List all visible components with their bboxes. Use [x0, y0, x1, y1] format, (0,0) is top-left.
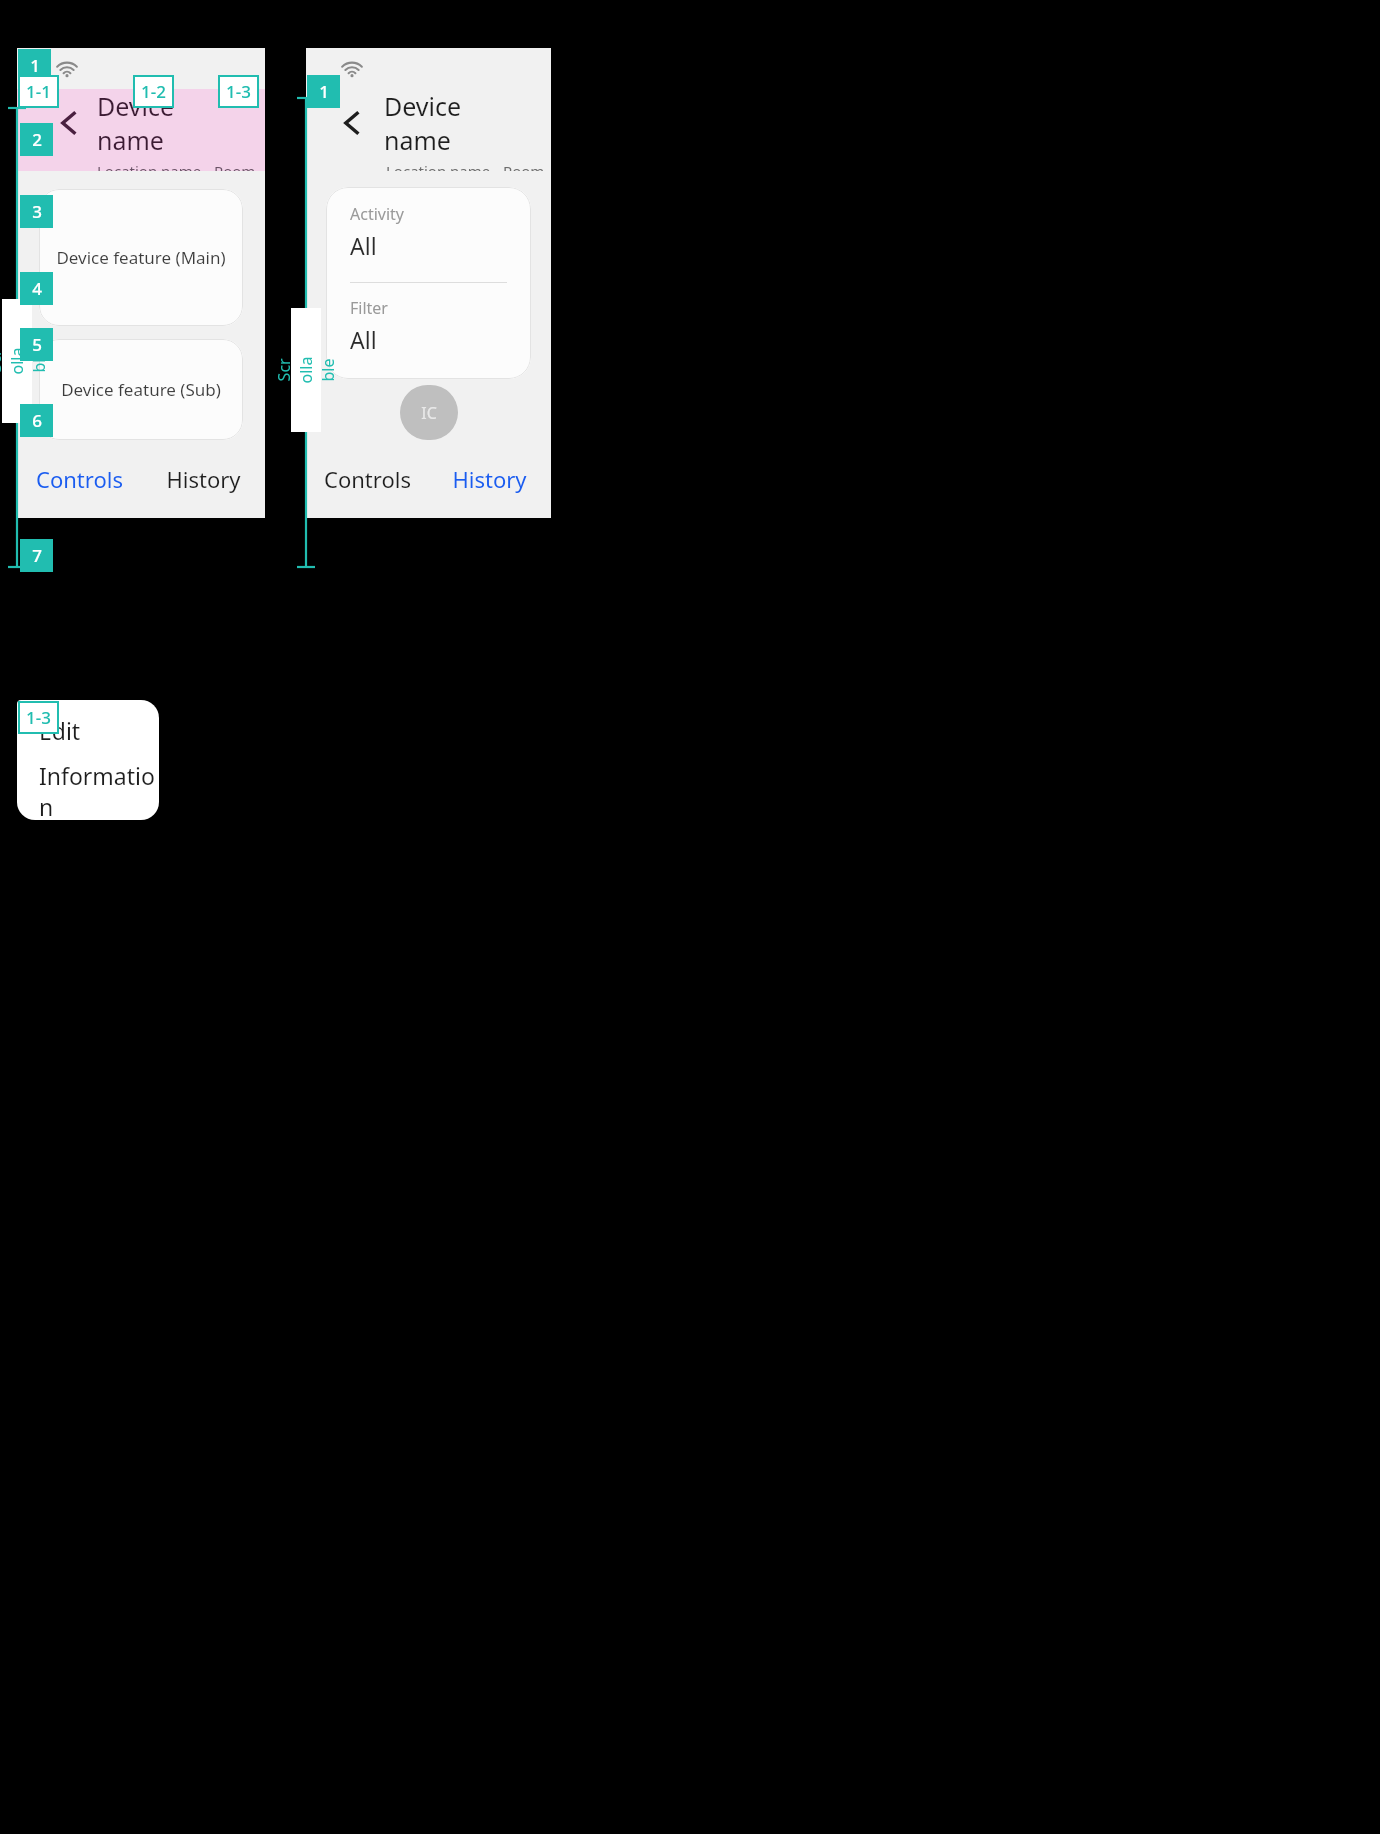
staticText: Activity	[350, 203, 405, 225]
button[interactable]: Device feature (Sub)	[39, 339, 243, 440]
staticText: Controls	[36, 464, 123, 494]
staticText: Edit	[39, 715, 81, 746]
staticText: All	[350, 230, 377, 261]
staticText: 1-3	[26, 706, 51, 729]
staticText: 7	[32, 544, 42, 567]
staticText: Scrollable	[273, 355, 339, 385]
staticText: Device name	[97, 89, 247, 157]
staticText: 1	[30, 54, 40, 77]
button[interactable]: Controls	[306, 440, 428, 518]
staticText: 6	[32, 409, 42, 432]
staticText: Filter	[350, 297, 388, 319]
staticText: Location name - Room name	[386, 161, 551, 171]
staticText: Controls	[324, 464, 411, 494]
button[interactable]: Edit	[17, 700, 159, 760]
button[interactable]: Filter	[326, 283, 531, 379]
button[interactable]: Back	[53, 106, 87, 140]
staticText: All	[350, 324, 377, 355]
button[interactable]: Back	[336, 106, 370, 140]
staticText: 1-3	[226, 80, 251, 103]
button[interactable]: Device feature (Main)	[39, 189, 243, 326]
staticText: Device feature (Main)	[56, 246, 226, 269]
button[interactable]: Activity	[326, 187, 531, 282]
staticText: 1-1	[26, 80, 51, 103]
staticText: Information	[39, 760, 159, 820]
staticText: IC	[421, 402, 437, 424]
button[interactable]: History	[141, 440, 265, 518]
staticText: 1	[319, 80, 329, 103]
staticText: 5	[32, 333, 42, 356]
staticText: Location name - Room name	[97, 161, 265, 171]
staticText: Device name	[384, 89, 531, 157]
staticText: History	[166, 464, 241, 494]
staticText: 3	[32, 200, 42, 223]
button[interactable]: Information	[17, 760, 159, 820]
staticText: History	[452, 464, 527, 494]
staticText: Device feature (Sub)	[61, 378, 221, 401]
button[interactable]: Controls	[17, 440, 141, 518]
staticText: 2	[32, 128, 42, 151]
staticText: 4	[32, 277, 42, 300]
staticText: 1-2	[141, 80, 166, 103]
staticText: Scrollable	[0, 346, 50, 376]
button[interactable]: History	[428, 440, 551, 518]
